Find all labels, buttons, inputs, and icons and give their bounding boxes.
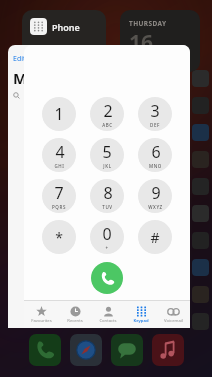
- staticText: Mailboxes: [13, 68, 89, 88]
- staticText: 8: [103, 182, 113, 204]
- button[interactable]: 3: [138, 97, 172, 131]
- button[interactable]: App: [111, 334, 143, 366]
- button[interactable]: 4: [42, 138, 76, 172]
- button[interactable]: Phone: [22, 10, 106, 70]
- button[interactable]: App: [29, 334, 61, 366]
- staticText: 3: [150, 100, 160, 122]
- button[interactable]: Contacts: [91, 301, 124, 328]
- staticText: 5: [102, 141, 112, 163]
- staticText: 1: [54, 103, 64, 125]
- staticText: 16: [129, 28, 154, 57]
- staticText: TUV: [102, 204, 113, 210]
- staticText: Recents: [67, 318, 83, 324]
- staticText: 2: [103, 100, 113, 122]
- staticText: 9: [151, 182, 161, 204]
- button[interactable]: Favourites: [24, 301, 58, 328]
- button[interactable]: 8: [90, 179, 124, 213]
- button[interactable]: 1: [42, 97, 76, 131]
- button[interactable]: App: [70, 334, 102, 366]
- button[interactable]: THURSDAY: [120, 10, 200, 72]
- staticText: 4: [55, 141, 65, 163]
- staticText: WXYZ: [148, 204, 163, 210]
- staticText: *: [55, 228, 63, 247]
- button[interactable]: 7: [42, 179, 76, 213]
- staticText: MNO: [149, 163, 162, 169]
- button[interactable]: Keypad: [124, 301, 157, 328]
- button[interactable]: 2: [90, 97, 124, 131]
- button[interactable]: 0: [90, 220, 124, 254]
- button[interactable]: 5: [90, 138, 124, 172]
- staticText: THURSDAY: [129, 19, 167, 28]
- staticText: +: [105, 245, 109, 251]
- staticText: Voicemail: [164, 318, 183, 324]
- button[interactable]: Recents: [58, 301, 91, 328]
- staticText: PQRS: [52, 204, 66, 210]
- staticText: 6: [151, 141, 161, 163]
- staticText: GHI: [54, 163, 65, 169]
- button[interactable]: *: [42, 220, 76, 254]
- staticText: Keypad: [133, 318, 149, 324]
- button[interactable]: Call: [91, 262, 123, 294]
- button[interactable]: #: [138, 220, 172, 254]
- staticText: 7: [54, 182, 64, 204]
- button[interactable]: 9: [138, 179, 172, 213]
- button[interactable]: App: [152, 334, 184, 366]
- staticText: ABC: [102, 122, 113, 128]
- staticText: DEF: [150, 122, 160, 128]
- staticText: #: [150, 228, 160, 247]
- staticText: 0: [102, 223, 112, 245]
- staticText: JKL: [103, 163, 112, 169]
- staticText: Phone: [52, 21, 80, 33]
- button[interactable]: 6: [138, 138, 172, 172]
- button[interactable]: Voicemail: [157, 301, 190, 328]
- staticText: Edit: [13, 54, 26, 64]
- staticText: Favourites: [31, 318, 52, 324]
- staticText: Contacts: [99, 318, 117, 324]
